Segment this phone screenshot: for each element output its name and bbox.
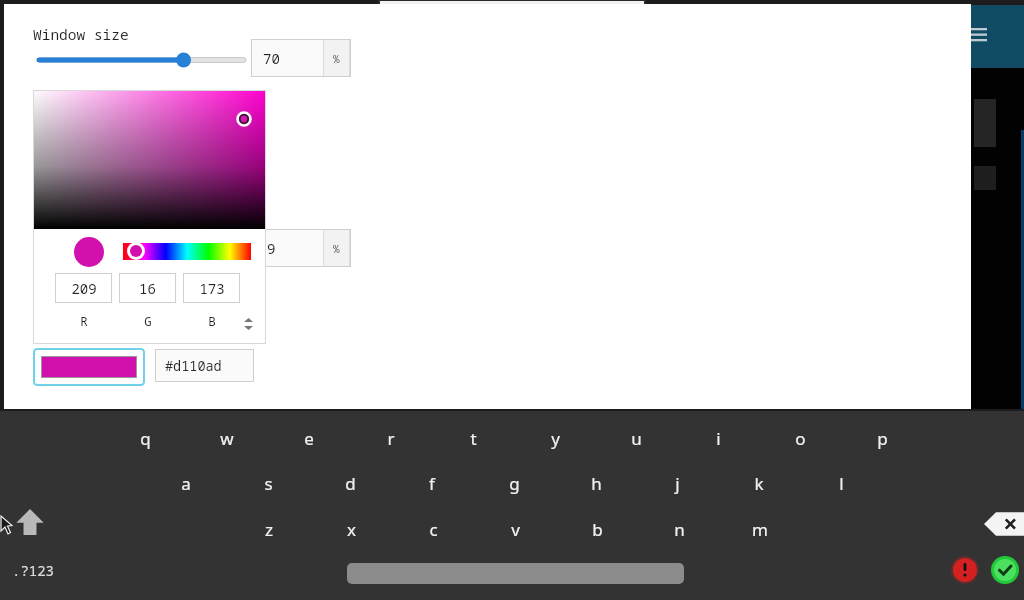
staticText: f	[429, 472, 435, 495]
staticText: %	[333, 241, 340, 256]
button[interactable]: Pick colour	[33, 348, 145, 386]
button[interactable]: t	[447, 421, 499, 455]
staticText: h	[591, 472, 602, 495]
staticText: x	[347, 518, 356, 541]
staticText: d	[345, 472, 356, 495]
staticText: q	[140, 427, 151, 450]
staticText: 173	[199, 279, 225, 298]
staticText: r	[387, 427, 395, 450]
staticText: 70	[263, 49, 280, 68]
button[interactable]: g	[488, 466, 540, 500]
button[interactable]: Menu	[963, 20, 997, 54]
staticText: s	[264, 472, 273, 495]
button[interactable]: Saturation and brightness	[33, 90, 266, 229]
button[interactable]: b	[571, 512, 623, 546]
staticText: g	[509, 472, 520, 495]
button[interactable]: l	[815, 466, 867, 500]
staticText: 9	[267, 239, 276, 258]
button[interactable]: Backspace	[984, 510, 1024, 538]
staticText: o	[795, 427, 806, 450]
button[interactable]: v	[489, 512, 541, 546]
staticText: k	[754, 472, 764, 495]
button[interactable]: q	[119, 421, 171, 455]
button[interactable]: Change colour model	[240, 313, 256, 335]
button[interactable]: c	[407, 512, 459, 546]
staticText: v	[511, 518, 520, 541]
staticText: i	[716, 427, 721, 450]
staticText: t	[470, 427, 477, 450]
staticText: G	[144, 313, 152, 330]
button[interactable]: s	[242, 466, 294, 500]
button[interactable]: Window size slider	[34, 49, 250, 71]
staticText: %	[333, 51, 340, 66]
staticText: z	[265, 518, 273, 541]
button[interactable]: Space	[347, 563, 684, 584]
button[interactable]: z	[243, 512, 295, 546]
staticText: 209	[71, 279, 97, 298]
button[interactable]: #d110ad	[155, 349, 254, 382]
staticText: y	[551, 427, 560, 450]
button[interactable]: y	[529, 421, 581, 455]
staticText: Window size	[33, 24, 129, 44]
button[interactable]: k	[733, 466, 785, 500]
button[interactable]: 16	[119, 273, 176, 303]
button[interactable]: m	[734, 512, 786, 546]
staticText: n	[674, 518, 685, 541]
staticText: .?123	[12, 561, 54, 580]
button[interactable]: .?123	[12, 556, 82, 584]
staticText: e	[304, 427, 314, 450]
staticText: p	[877, 427, 888, 450]
button[interactable]: Error	[951, 556, 979, 584]
button[interactable]: Hue	[123, 243, 251, 260]
staticText: 16	[139, 279, 156, 298]
staticText: R	[80, 313, 88, 330]
button[interactable]: 9	[251, 229, 351, 267]
button[interactable]: 173	[183, 273, 240, 303]
button[interactable]: d	[324, 466, 376, 500]
staticText: j	[675, 472, 680, 495]
button[interactable]: a	[160, 466, 212, 500]
button[interactable]: i	[692, 421, 744, 455]
button[interactable]: x	[325, 512, 377, 546]
staticText: w	[220, 427, 234, 450]
button[interactable]: n	[653, 512, 705, 546]
button[interactable]: Confirm	[991, 556, 1019, 584]
button[interactable]: u	[610, 421, 662, 455]
staticText: b	[592, 518, 603, 541]
staticText: u	[631, 427, 642, 450]
button[interactable]: w	[201, 421, 253, 455]
staticText: m	[752, 518, 768, 541]
staticText: #d110ad	[165, 357, 222, 375]
staticText: l	[839, 472, 844, 495]
staticText: c	[429, 518, 438, 541]
button[interactable]: j	[651, 466, 703, 500]
staticText: B	[208, 313, 216, 330]
button[interactable]: f	[406, 466, 458, 500]
button[interactable]: 70	[251, 39, 351, 77]
button[interactable]: o	[774, 421, 826, 455]
button[interactable]: p	[856, 421, 908, 455]
button[interactable]: r	[365, 421, 417, 455]
staticText: a	[181, 472, 191, 495]
button[interactable]: h	[570, 466, 622, 500]
button[interactable]: e	[283, 421, 335, 455]
button[interactable]: Shift	[12, 505, 48, 539]
button[interactable]: 209	[55, 273, 112, 303]
